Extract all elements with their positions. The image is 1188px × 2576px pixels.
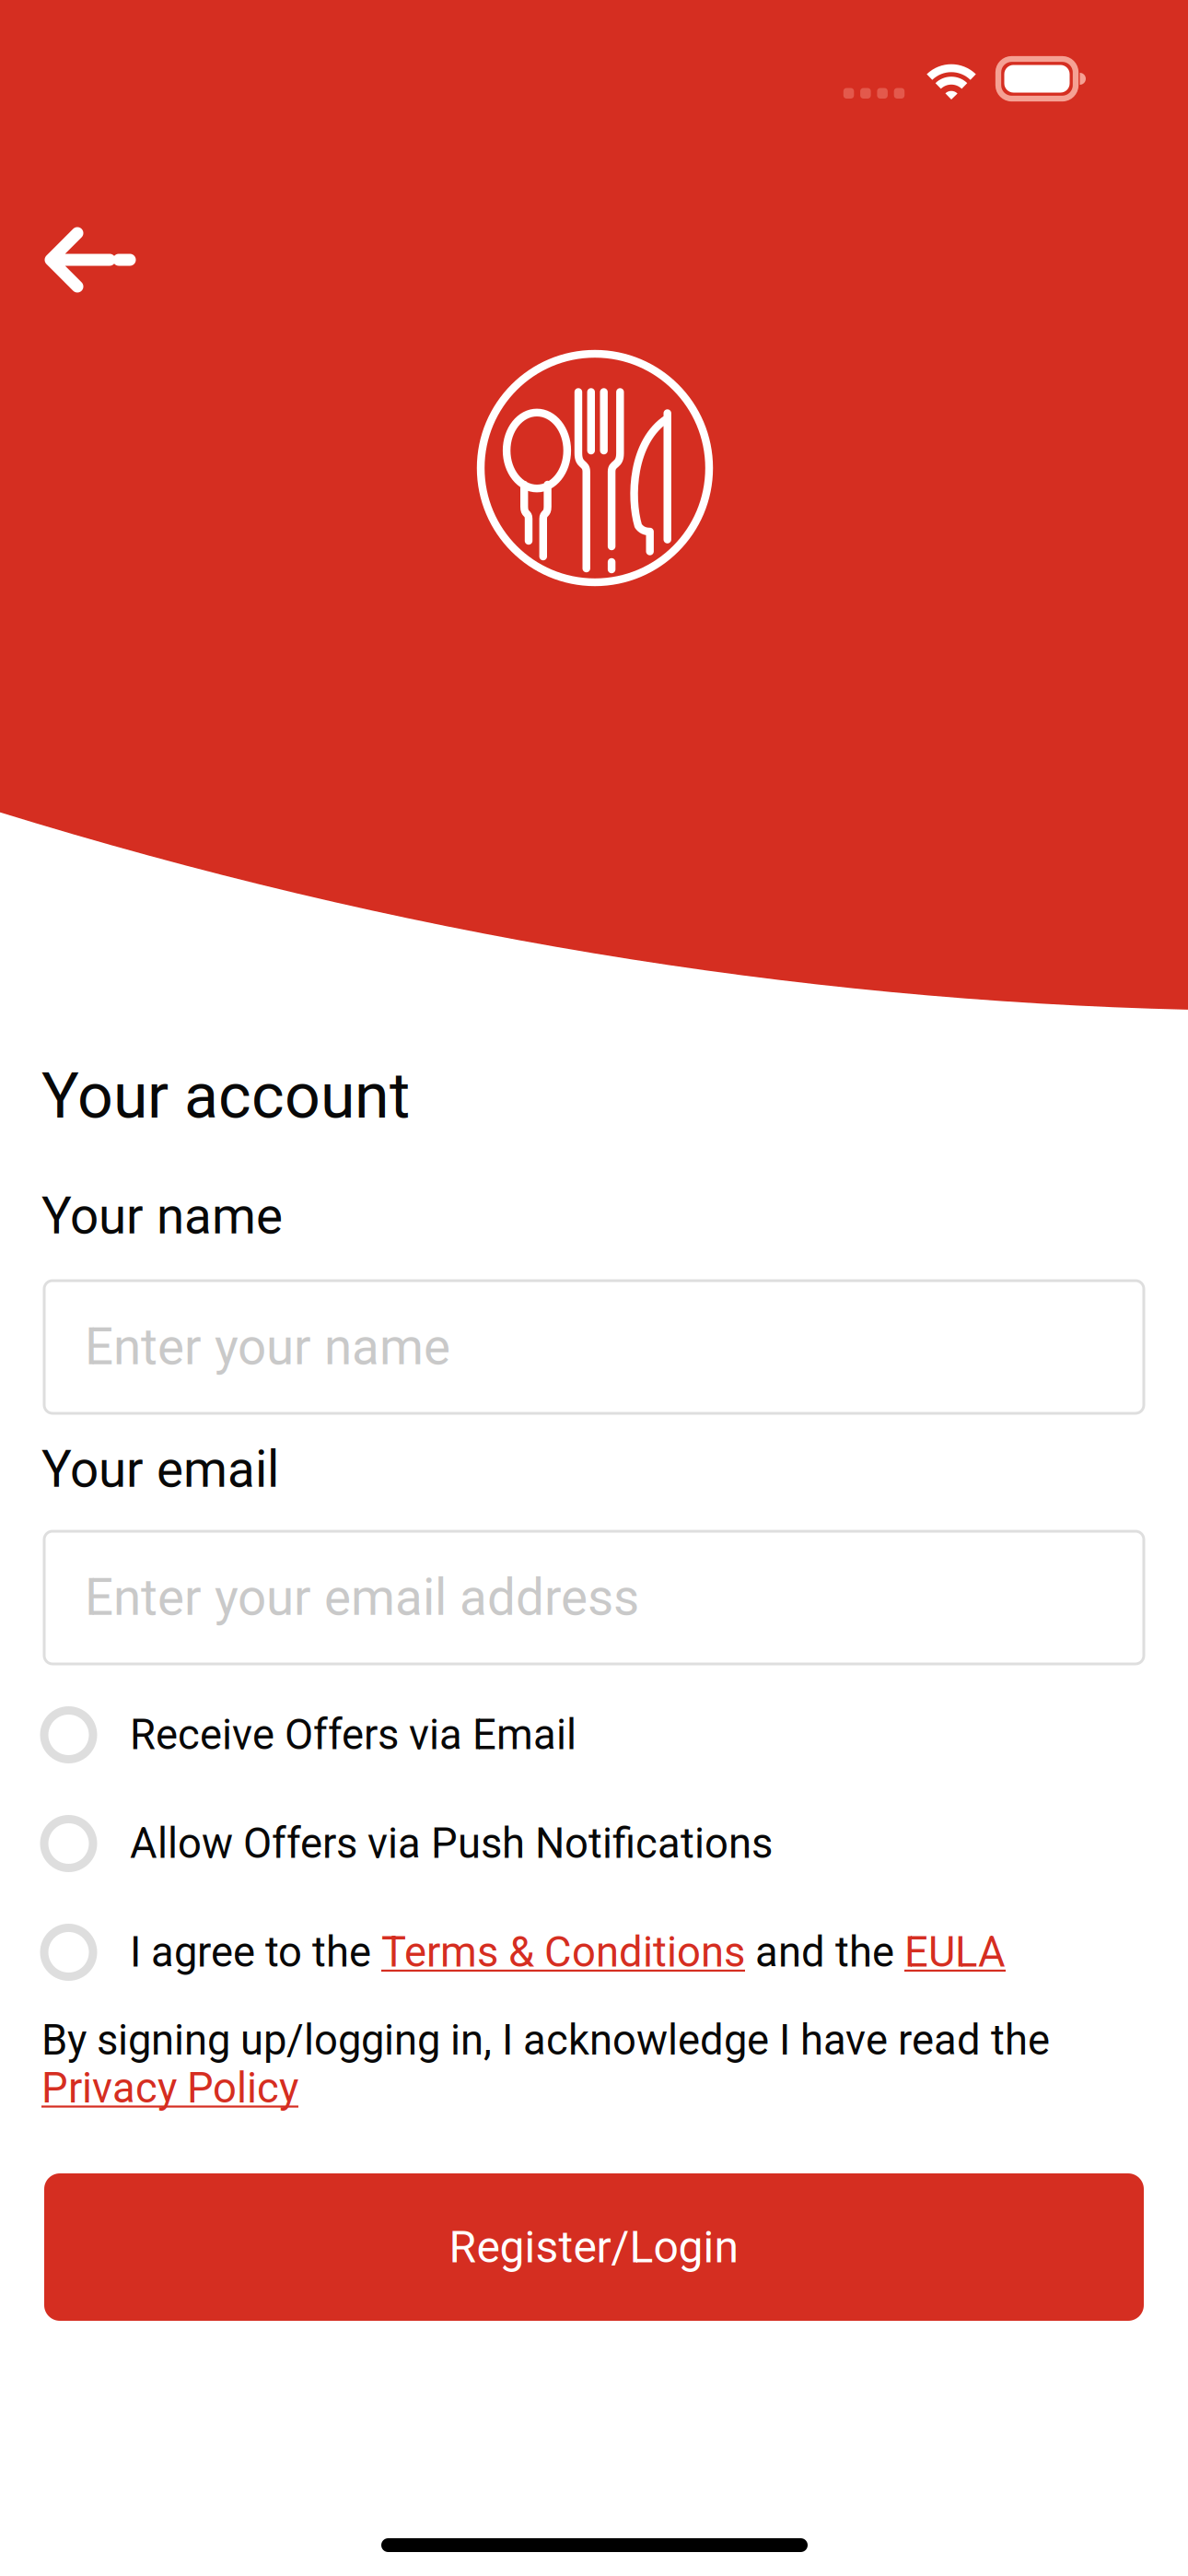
button[interactable]: Receive Offers via Email: [0, 1680, 1188, 1789]
button[interactable]: Register/Login: [44, 2173, 1144, 2321]
staticText: Allow Offers via Push Notifications: [130, 1819, 773, 1868]
staticText: Enter your email address: [85, 1568, 639, 1627]
staticText: Your email: [41, 1440, 279, 1499]
staticText: Privacy Policy: [41, 2064, 298, 2113]
staticText: I agree to the: [130, 1928, 381, 1977]
button[interactable]: Allow Offers via Push Notifications: [0, 1789, 1188, 1898]
staticText: Your name: [41, 1187, 283, 1246]
staticText: By signing up/logging in, I acknowledge …: [41, 2016, 1050, 2065]
button[interactable]: Enter your name: [44, 1281, 1144, 1413]
button[interactable]: Enter your email address: [44, 1531, 1144, 1664]
staticText: Enter your name: [85, 1317, 450, 1377]
staticText: EULA: [904, 1928, 1006, 1977]
staticText: Register/Login: [449, 2221, 739, 2273]
button[interactable]: I agree to the: [0, 1898, 1188, 2007]
staticText: Receive Offers via Email: [130, 1710, 577, 1759]
staticText: and the: [745, 1928, 904, 1977]
button[interactable]: Back: [31, 214, 149, 306]
staticText: Terms & Conditions: [381, 1928, 745, 1977]
button[interactable]: Privacy Policy: [41, 2064, 298, 2113]
staticText: Your account: [41, 1060, 410, 1133]
